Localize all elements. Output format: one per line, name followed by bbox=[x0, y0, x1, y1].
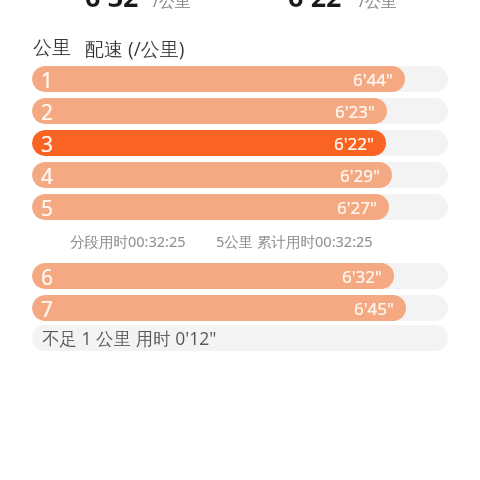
staticText: 6'44" bbox=[353, 68, 393, 91]
button[interactable]: 第 6 公里 配速 6'32" bbox=[32, 263, 448, 289]
staticText: 6'27" bbox=[337, 196, 377, 219]
staticText: 6'22" bbox=[288, 0, 355, 15]
staticText: 7 bbox=[41, 295, 54, 321]
staticText: 6'29" bbox=[340, 164, 380, 187]
staticText: /公里 bbox=[359, 0, 397, 12]
button[interactable]: 第 4 公里 配速 6'29" bbox=[32, 162, 448, 188]
staticText: 2 bbox=[41, 98, 54, 124]
staticText: 6'23" bbox=[335, 100, 375, 123]
staticText: 5公里 累计用时00:32:25 bbox=[216, 231, 373, 251]
staticText: 1 bbox=[41, 66, 54, 92]
staticText: /公里 bbox=[153, 0, 191, 12]
staticText: 6'45" bbox=[354, 297, 394, 320]
button[interactable]: 第 1 公里 配速 6'44" bbox=[32, 66, 448, 92]
staticText: 不足 1 公里 用时 0'12" bbox=[42, 326, 217, 350]
staticText: 配速 (/公里) bbox=[85, 36, 185, 62]
staticText: 3 bbox=[41, 130, 54, 156]
staticText: 5 bbox=[41, 194, 54, 220]
button[interactable]: 第 5 公里 配速 6'27" bbox=[32, 194, 448, 220]
button[interactable]: 第 3 公里 配速 6'22" bbox=[32, 130, 448, 156]
staticText: 4 bbox=[41, 162, 54, 188]
staticText: 6'32" bbox=[85, 0, 152, 15]
staticText: 6 bbox=[41, 263, 54, 289]
staticText: 公里 bbox=[33, 36, 71, 60]
button[interactable]: 不足 1 公里 用时 0'12" bbox=[32, 325, 448, 351]
staticText: 6'22" bbox=[334, 132, 374, 155]
button[interactable]: 第 7 公里 配速 6'45" bbox=[32, 295, 448, 321]
staticText: 分段用时00:32:25 bbox=[70, 231, 186, 251]
staticText: 6'32" bbox=[342, 265, 382, 288]
button[interactable]: 第 2 公里 配速 6'23" bbox=[32, 98, 448, 124]
